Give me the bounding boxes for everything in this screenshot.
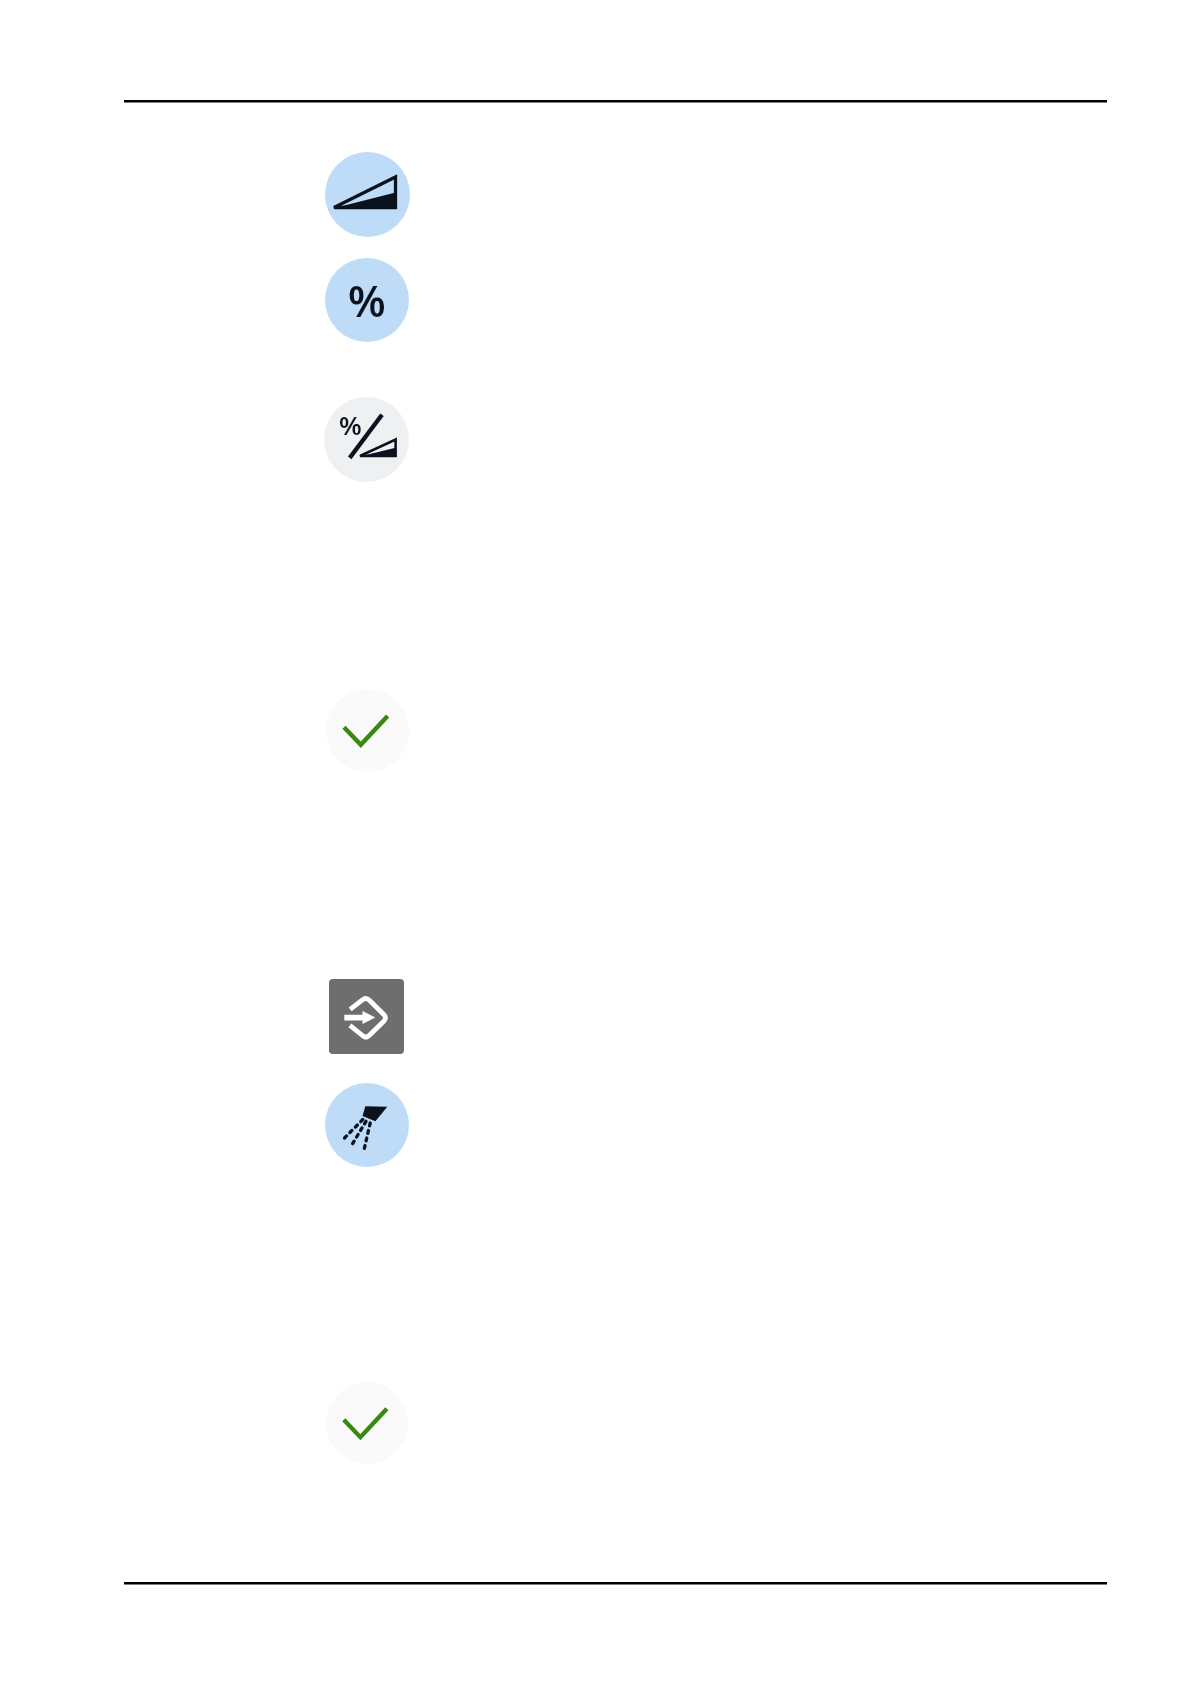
button[interactable]: Done [326,1382,408,1464]
button[interactable]: Done [326,689,409,772]
button[interactable]: Percent per gradient [324,397,409,482]
staticText: % [348,271,386,330]
button[interactable]: Percentage [325,258,409,342]
button[interactable]: Shower [325,1083,409,1167]
button[interactable]: Log in [329,979,404,1054]
staticText: % [339,407,362,441]
button[interactable]: Contrast [325,152,410,237]
